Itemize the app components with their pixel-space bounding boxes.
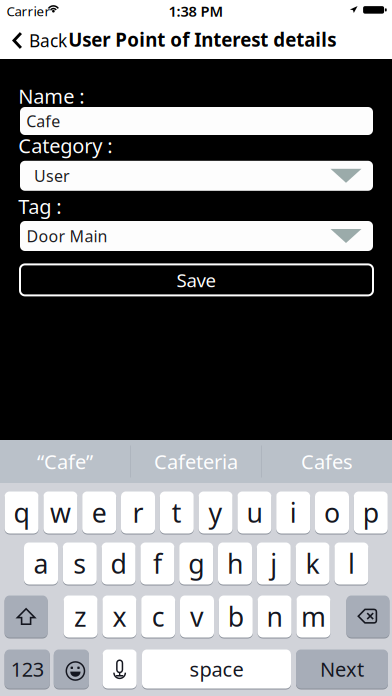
button[interactable]: z (64, 595, 98, 638)
button[interactable]: j (257, 542, 291, 585)
staticText: 123 (11, 656, 44, 682)
button[interactable]: q (5, 491, 39, 534)
staticText: x (112, 599, 126, 634)
staticText: q (14, 495, 30, 530)
staticText: p (363, 495, 379, 530)
button[interactable]: Next (296, 649, 388, 689)
button[interactable]: l (334, 542, 368, 585)
button[interactable]: b (219, 595, 253, 638)
staticText: Back (29, 29, 67, 52)
staticText: Save (176, 267, 216, 292)
staticText: space (189, 656, 243, 682)
staticText: c (152, 599, 165, 634)
staticText: m (301, 599, 326, 634)
staticText: f (153, 546, 162, 581)
staticText: t (172, 495, 182, 530)
staticText: n (267, 599, 283, 634)
button[interactable]: y (199, 491, 233, 534)
button[interactable]: Cafeteria (131, 440, 261, 483)
button[interactable]: x (102, 595, 136, 638)
button[interactable]: Emoji (54, 649, 89, 689)
staticText: d (111, 546, 127, 581)
staticText: Cafeteria (154, 448, 238, 475)
button[interactable]: r (121, 491, 155, 534)
button[interactable]: o (315, 491, 349, 534)
button[interactable]: Shift (5, 595, 48, 638)
button[interactable]: Door Main (20, 221, 373, 251)
staticText: s (73, 546, 86, 581)
staticText: w (50, 495, 71, 530)
button[interactable]: m (296, 595, 330, 638)
staticText: u (246, 495, 262, 530)
staticText: User (34, 165, 70, 186)
staticText: “Cafe” (37, 448, 93, 475)
button[interactable]: s (63, 542, 97, 585)
staticText: a (33, 546, 48, 581)
staticText: e (92, 495, 107, 530)
button[interactable]: g (179, 542, 213, 585)
button[interactable]: i (276, 491, 310, 534)
staticText: b (228, 599, 244, 634)
staticText: v (190, 599, 204, 634)
button[interactable]: Back (0, 22, 75, 59)
staticText: Category : (18, 132, 112, 159)
staticText: o (324, 495, 340, 530)
button[interactable]: w (43, 491, 77, 534)
button[interactable]: e (82, 491, 116, 534)
button[interactable]: Cafes (262, 440, 392, 483)
button[interactable]: u (237, 491, 271, 534)
staticText: Cafe (26, 110, 60, 132)
staticText: Cafes (301, 448, 353, 475)
staticText: l (348, 546, 355, 581)
button[interactable]: n (258, 595, 292, 638)
button[interactable]: Save (20, 264, 373, 295)
button[interactable]: c (141, 595, 175, 638)
staticText: h (227, 546, 243, 581)
button[interactable]: k (296, 542, 330, 585)
button[interactable]: v (180, 595, 214, 638)
button[interactable]: t (160, 491, 194, 534)
button[interactable]: p (354, 491, 388, 534)
staticText: Next (320, 656, 364, 682)
staticText: k (306, 546, 320, 581)
staticText: r (132, 495, 143, 530)
button[interactable]: d (102, 542, 136, 585)
button[interactable]: f (140, 542, 174, 585)
staticText: 1:38 PM (168, 1, 223, 21)
staticText: j (270, 546, 277, 581)
staticText: Carrier (6, 2, 50, 20)
button[interactable]: h (218, 542, 252, 585)
staticText: Name : (18, 83, 84, 109)
staticText: i (290, 495, 297, 530)
staticText: User Point of Interest details (68, 27, 336, 52)
staticText: Tag : (18, 193, 61, 220)
button[interactable]: space (142, 649, 291, 689)
staticText: y (209, 495, 223, 530)
staticText: z (74, 599, 87, 634)
staticText: g (188, 546, 204, 581)
button[interactable]: Delete (346, 595, 389, 638)
button[interactable]: “Cafe” (0, 440, 130, 483)
button[interactable]: 123 (5, 649, 50, 689)
button[interactable]: User (20, 161, 373, 191)
button[interactable]: Dictate (103, 649, 137, 689)
staticText: Door Main (26, 225, 107, 247)
button[interactable]: a (24, 542, 58, 585)
